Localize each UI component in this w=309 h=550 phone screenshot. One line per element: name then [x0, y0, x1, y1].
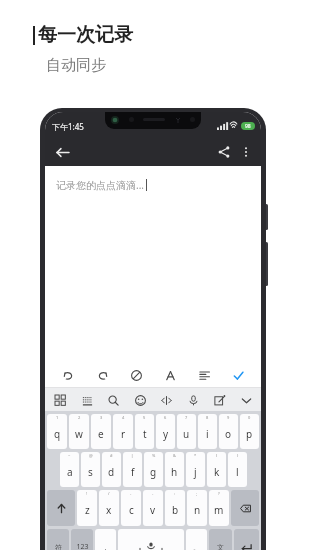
staticText: 。	[193, 543, 200, 550]
staticText: /	[108, 491, 110, 496]
staticText: s	[88, 465, 93, 479]
staticText: 文	[217, 543, 224, 550]
staticText: w	[75, 427, 83, 441]
button[interactable]: Voice input	[182, 389, 204, 411]
staticText: d	[108, 465, 115, 479]
staticText: 9	[227, 415, 230, 420]
button[interactable]: 9	[219, 414, 238, 449]
staticText: u	[183, 427, 190, 441]
button[interactable]: 文	[209, 529, 232, 550]
button[interactable]: 。	[186, 529, 207, 550]
staticText: r	[121, 427, 126, 441]
staticText: )	[237, 453, 239, 458]
button[interactable]: *	[186, 452, 205, 487]
button[interactable]: Keyboard	[76, 389, 98, 411]
button[interactable]: Clipboard	[155, 389, 177, 411]
button[interactable]: ，	[95, 529, 116, 550]
button[interactable]: !	[77, 490, 97, 526]
button[interactable]: Insert image	[125, 364, 147, 386]
staticText: t	[143, 427, 147, 441]
staticText: 自动同步	[46, 56, 106, 75]
staticText: 8	[206, 415, 209, 420]
staticText: 符	[55, 543, 62, 550]
button[interactable]: 8	[198, 414, 217, 449]
staticText: j	[194, 465, 197, 479]
button[interactable]: Shift	[47, 490, 75, 526]
staticText: h	[171, 465, 178, 479]
staticText: 98	[245, 123, 251, 130]
button[interactable]: 3	[91, 414, 111, 449]
staticText: v	[150, 503, 156, 517]
button[interactable]: 7	[177, 414, 196, 449]
button[interactable]: 符	[47, 529, 69, 550]
button[interactable]: More options	[235, 141, 257, 163]
button[interactable]: 2	[69, 414, 89, 449]
staticText: ;	[196, 491, 198, 496]
button[interactable]: Handwriting	[208, 389, 230, 411]
button[interactable]: 4	[113, 414, 133, 449]
staticText: @	[89, 453, 93, 458]
staticText: y	[163, 427, 169, 441]
button[interactable]: Search	[102, 389, 124, 411]
staticText: 2	[78, 415, 81, 420]
button[interactable]: 5	[135, 414, 154, 449]
staticText: ~	[68, 453, 71, 458]
button[interactable]: Enter	[234, 529, 259, 550]
button[interactable]: ?	[209, 490, 229, 526]
staticText: 每一次记录	[38, 23, 133, 47]
staticText: 记录您的点点滴滴...	[56, 178, 145, 192]
staticText: c	[129, 503, 134, 517]
staticText: n	[194, 503, 201, 517]
staticText: k	[214, 465, 220, 479]
button[interactable]: |	[123, 452, 142, 487]
staticText: g	[150, 465, 157, 479]
staticText: 5	[143, 415, 146, 420]
button[interactable]: Space	[118, 529, 184, 550]
button[interactable]: )	[228, 452, 247, 487]
staticText: !	[86, 491, 88, 496]
button[interactable]: Redo	[91, 364, 113, 386]
staticText: 下午1:45	[52, 121, 84, 132]
staticText: 123	[76, 542, 89, 550]
button[interactable]: :	[165, 490, 185, 526]
button[interactable]: Backspace	[231, 490, 259, 526]
button[interactable]: 123	[71, 529, 93, 550]
button[interactable]: @	[81, 452, 100, 487]
button[interactable]: Undo	[57, 364, 79, 386]
staticText: #	[110, 453, 113, 458]
staticText: 4	[122, 415, 125, 420]
button[interactable]: Done	[227, 364, 249, 386]
staticText: 3	[100, 415, 103, 420]
button[interactable]: Back	[51, 141, 73, 163]
button[interactable]: Hide keyboard	[235, 389, 257, 411]
staticText: a	[67, 465, 73, 479]
button[interactable]: 1	[47, 414, 67, 449]
button[interactable]: ;	[187, 490, 207, 526]
staticText: &	[173, 453, 176, 458]
staticText: b	[172, 503, 179, 517]
button[interactable]: Share	[213, 141, 235, 163]
button[interactable]: Text format	[159, 364, 181, 386]
button[interactable]: &	[165, 452, 184, 487]
staticText: *	[194, 453, 197, 458]
button[interactable]: -	[143, 490, 163, 526]
button[interactable]: 6	[156, 414, 175, 449]
button[interactable]: 0	[240, 414, 259, 449]
button[interactable]: ~	[60, 452, 79, 487]
staticText: |	[131, 453, 134, 458]
button[interactable]: (	[207, 452, 226, 487]
staticText: 7	[185, 415, 188, 420]
button[interactable]: -	[121, 490, 141, 526]
button[interactable]: %	[144, 452, 163, 487]
button[interactable]: /	[99, 490, 119, 526]
button[interactable]: Emoji	[129, 389, 151, 411]
staticText: (	[216, 453, 218, 458]
button[interactable]: Alignment	[193, 364, 215, 386]
button[interactable]: #	[102, 452, 121, 487]
staticText: 0	[248, 415, 251, 420]
staticText: -	[130, 491, 132, 496]
button[interactable]: Apps	[49, 389, 71, 411]
staticText: z	[85, 503, 90, 517]
staticText: p	[246, 427, 253, 441]
staticText: :	[174, 491, 176, 496]
